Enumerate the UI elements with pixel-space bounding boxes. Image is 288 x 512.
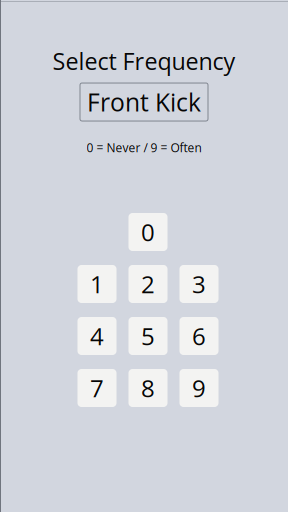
staticText: 0 = Never / 9 = Often: [86, 139, 201, 156]
staticText: 0: [141, 216, 155, 248]
staticText: 7: [90, 372, 104, 404]
button[interactable]: 8: [128, 369, 167, 407]
button[interactable]: Front Kick: [80, 83, 208, 121]
button[interactable]: 9: [179, 369, 218, 407]
button[interactable]: 2: [128, 265, 167, 303]
button[interactable]: 3: [179, 265, 218, 303]
staticText: 6: [192, 320, 206, 352]
button[interactable]: 4: [77, 317, 116, 355]
staticText: 9: [192, 372, 206, 404]
button[interactable]: 5: [128, 317, 167, 355]
staticText: Front Kick: [87, 85, 201, 119]
staticText: 4: [90, 320, 104, 352]
staticText: 3: [192, 268, 206, 300]
staticText: 1: [90, 268, 104, 300]
button[interactable]: 6: [179, 317, 218, 355]
button[interactable]: 0: [128, 213, 167, 251]
staticText: 8: [141, 372, 155, 404]
staticText: 2: [141, 268, 155, 300]
staticText: 5: [141, 320, 155, 352]
button[interactable]: 1: [77, 265, 116, 303]
staticText: Select Frequency: [52, 45, 235, 77]
button[interactable]: 7: [77, 369, 116, 407]
